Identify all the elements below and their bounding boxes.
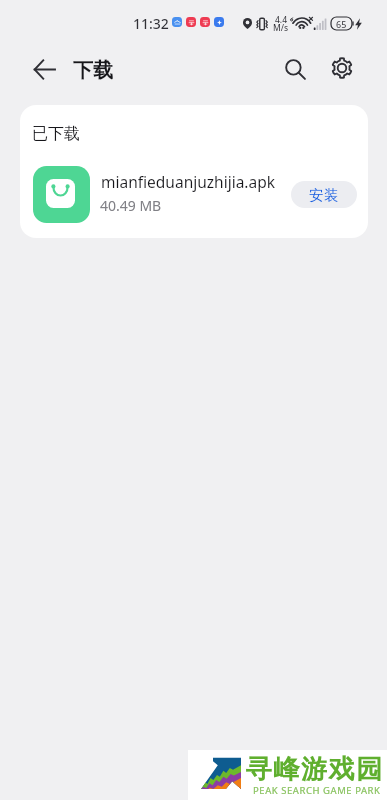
button[interactable]: Settings	[322, 48, 362, 88]
button[interactable]: Search	[275, 49, 315, 89]
staticText: 40.49 MB	[100, 196, 162, 215]
staticText: M/s	[273, 22, 289, 34]
staticText: 下载	[73, 58, 113, 83]
staticText: PEAK SEARCH GAME PARK	[253, 784, 381, 797]
staticText: 寻峰游戏园	[245, 753, 383, 786]
staticText: 已下载	[32, 124, 80, 144]
staticText: mianfieduanjuzhijia.apk	[101, 171, 276, 192]
button[interactable]: 安装	[291, 181, 357, 208]
button[interactable]: Back	[24, 49, 64, 89]
staticText: 4.4	[275, 14, 288, 26]
staticText: 11:32	[133, 14, 169, 33]
staticText: 安装	[309, 186, 340, 204]
staticText: 65	[336, 18, 347, 30]
